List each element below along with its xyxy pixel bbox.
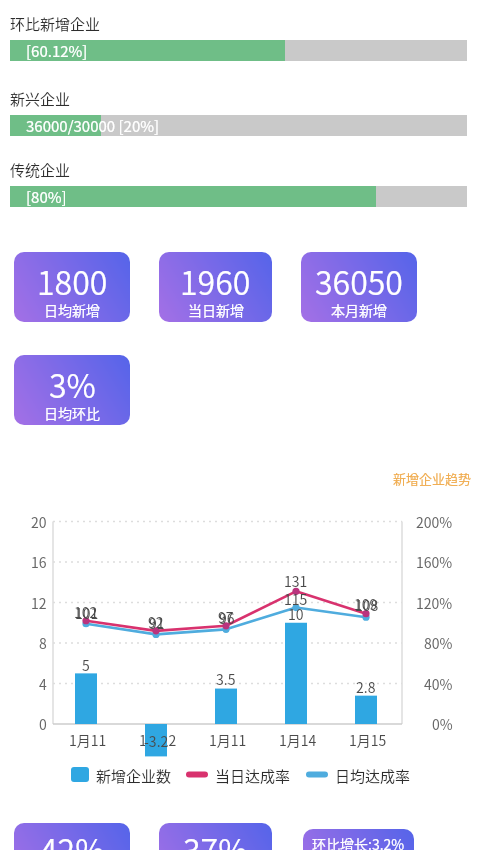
staticText: 8 <box>39 633 47 653</box>
staticText: 1月15 <box>349 730 387 750</box>
staticText: 97 <box>218 607 234 627</box>
button[interactable]: 37% <box>159 823 272 850</box>
button[interactable]: [60.12%] <box>10 40 467 61</box>
staticText: [80%] <box>26 186 67 207</box>
staticText: 3.5 <box>216 669 236 689</box>
button[interactable]: 36050 <box>301 252 417 322</box>
staticText: 115 <box>284 589 308 609</box>
staticText: 160% <box>416 552 453 572</box>
staticText: 新增企业趋势 <box>393 469 472 488</box>
staticText: 当日新增 <box>188 300 244 320</box>
staticText: 92 <box>148 612 164 632</box>
staticText: 4 <box>39 674 47 694</box>
staticText: 日均环比 <box>44 403 100 423</box>
staticText: 3% <box>49 361 96 407</box>
staticText: 1月12 <box>139 730 177 750</box>
staticText: 37% <box>183 826 248 850</box>
button[interactable]: 日均达成率 <box>335 765 411 787</box>
staticText: 80% <box>424 633 453 653</box>
staticText: 16 <box>31 552 47 572</box>
button[interactable]: 1800 <box>14 252 130 322</box>
staticText: 本月新增 <box>331 300 387 320</box>
staticText: 传统企业 <box>10 159 71 181</box>
staticText: 40% <box>424 674 453 694</box>
staticText: 1960 <box>180 258 251 304</box>
button[interactable]: 新增企业数 <box>96 765 172 787</box>
staticText: 102 <box>74 602 98 622</box>
staticText: 环比新增企业 <box>10 13 101 35</box>
staticText: 131 <box>284 571 308 591</box>
staticText: 20 <box>31 512 47 532</box>
staticText: 2.8 <box>356 677 376 697</box>
staticText: 109 <box>354 594 378 614</box>
button[interactable]: 3% <box>14 355 130 425</box>
staticText: 12 <box>31 593 47 613</box>
staticText: 环比增长:3.2% <box>312 834 405 850</box>
staticText: 0% <box>432 714 453 734</box>
staticText: 日均新增 <box>44 300 100 320</box>
staticText: 101 <box>75 603 99 623</box>
staticText: 1800 <box>37 258 108 304</box>
staticText: 200% <box>416 512 453 532</box>
staticText: 120% <box>416 593 453 613</box>
staticText: 36000/30000 [20%] <box>26 115 160 136</box>
button[interactable]: 当日达成率 <box>215 765 291 787</box>
staticText: 1月11 <box>209 730 247 750</box>
staticText: 96 <box>219 608 235 628</box>
button[interactable]: 1960 <box>159 252 272 322</box>
staticText: 36050 <box>315 258 403 304</box>
staticText: 10 <box>288 604 304 624</box>
staticText: 108 <box>355 595 379 615</box>
staticText: -3.2 <box>144 731 169 751</box>
staticText: [60.12%] <box>26 40 88 61</box>
button[interactable]: 36000/30000 [20%] <box>10 115 467 136</box>
staticText: 新兴企业 <box>10 88 71 110</box>
button[interactable]: [80%] <box>10 186 467 207</box>
staticText: 42% <box>40 826 105 850</box>
button[interactable]: 环比增长:3.2% <box>303 829 414 850</box>
staticText: 5 <box>82 655 90 675</box>
staticText: 0 <box>39 714 47 734</box>
button[interactable]: 42% <box>14 823 130 850</box>
staticText: 1月14 <box>279 730 317 750</box>
staticText: 1月11 <box>69 730 107 750</box>
staticText: 91 <box>149 613 165 633</box>
